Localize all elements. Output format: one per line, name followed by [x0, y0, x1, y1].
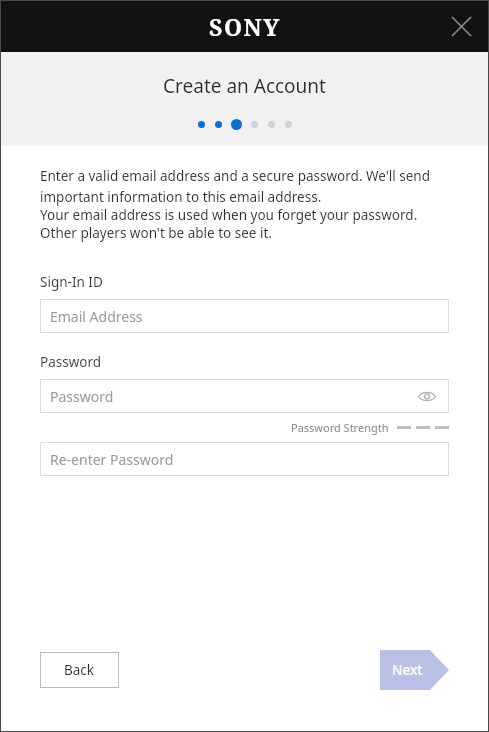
- staticText: Your email address is used when you forg…: [40, 206, 418, 224]
- button[interactable]: Email Address: [40, 299, 449, 333]
- staticText: Email Address: [50, 307, 143, 326]
- button[interactable]: Password: [40, 379, 449, 413]
- staticText: Sign-In ID: [40, 273, 103, 291]
- staticText: Re-enter Password: [50, 450, 174, 469]
- staticText: Enter a valid email address and a secure…: [40, 167, 449, 206]
- staticText: Create an Account: [163, 73, 326, 99]
- button[interactable]: Next: [380, 650, 449, 690]
- button[interactable]: Close: [439, 4, 483, 48]
- staticText: Next: [392, 661, 423, 679]
- staticText: Password Strength: [291, 420, 389, 435]
- staticText: Password: [50, 387, 114, 406]
- button[interactable]: Re-enter Password: [40, 442, 449, 476]
- staticText: Other players won't be able to see it.: [40, 224, 272, 242]
- staticText: Password: [40, 353, 102, 371]
- staticText: Back: [64, 661, 95, 679]
- staticText: SONY: [209, 11, 281, 42]
- button[interactable]: Show password: [416, 385, 438, 407]
- button[interactable]: Back: [40, 652, 119, 688]
